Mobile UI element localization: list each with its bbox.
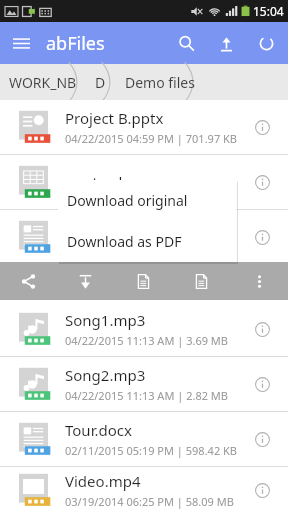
button[interactable]: More options (230, 262, 288, 300)
button[interactable]: Download original (58, 180, 237, 221)
button[interactable]: Share (0, 262, 57, 300)
button[interactable]: Upload (206, 23, 246, 63)
staticText: 04/22/2015 11:13 AM | 2.82 MB (65, 388, 228, 403)
staticText: abFiles (46, 31, 105, 56)
staticText: Video.mp4 (65, 471, 141, 491)
button[interactable]: Details (240, 417, 284, 461)
button[interactable]: Search (166, 23, 206, 63)
button[interactable]: Details (240, 160, 284, 204)
button[interactable]: Details (240, 307, 284, 351)
button[interactable]: Move (172, 262, 230, 300)
staticText: quote.xlsx (65, 172, 138, 192)
staticText: WORK_NB (9, 73, 77, 92)
button[interactable]: D (85, 64, 115, 100)
staticText: Download as PDF (67, 232, 182, 251)
button[interactable]: Download as PDF (58, 221, 237, 262)
staticText: 02/11/2015 05:19 PM | 598.42 KB (65, 443, 237, 458)
button[interactable]: Song1.mp3 (0, 302, 288, 356)
button[interactable]: Details (0, 210, 288, 264)
button[interactable]: Details (240, 215, 284, 259)
button[interactable]: Project B.pptx (0, 100, 288, 154)
staticText: Download original (67, 191, 188, 210)
button[interactable]: quote.xlsx (0, 155, 288, 209)
staticText: 15:04 (253, 3, 284, 19)
staticText: D (95, 73, 106, 92)
button[interactable]: Demo files (115, 64, 205, 100)
button[interactable]: Details (240, 468, 284, 512)
button[interactable]: Menu (0, 22, 42, 64)
staticText: Demo files (125, 73, 195, 92)
staticText: Tour.docx (65, 420, 132, 440)
button[interactable]: Copy (114, 262, 172, 300)
button[interactable]: Video.mp4 (0, 467, 288, 512)
button[interactable]: Details (240, 105, 284, 149)
button[interactable]: Download (57, 262, 114, 300)
button[interactable]: Tour.docx (0, 412, 288, 466)
staticText: Song1.mp3 (65, 310, 146, 330)
button[interactable]: Song2.mp3 (0, 357, 288, 411)
button[interactable]: Refresh (246, 23, 286, 63)
staticText: 03/19/2014 06:25 PM | 58.09 MB (65, 494, 234, 509)
button[interactable]: WORK_NB (0, 64, 85, 100)
staticText: 04/22/2015 11:13 AM | 3.69 MB (65, 333, 228, 348)
staticText: Song2.mp3 (65, 365, 146, 385)
button[interactable]: Details (240, 362, 284, 406)
staticText: 04/22/2015 04:59 PM | 701.97 KB (65, 131, 237, 146)
staticText: Project B.pptx (65, 108, 164, 128)
